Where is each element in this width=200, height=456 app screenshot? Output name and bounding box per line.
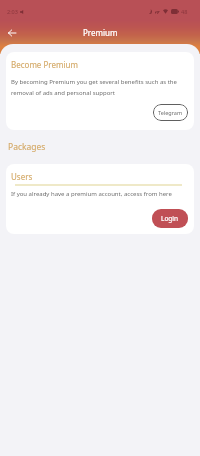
staticText: By becoming Premium you get several bene… <box>11 78 188 96</box>
staticText: Premium <box>83 27 118 38</box>
button[interactable]: Back <box>2 23 22 43</box>
staticText: Packages <box>8 141 46 153</box>
staticText: Telegram <box>158 109 183 116</box>
button[interactable]: Telegram <box>153 104 188 121</box>
staticText: 2:03 <box>7 8 18 15</box>
staticText: Login <box>161 214 179 223</box>
staticText: Users <box>11 171 33 182</box>
staticText: 48 <box>181 8 188 15</box>
staticText: If you already have a premium account, a… <box>11 190 172 198</box>
staticText: Become Premium <box>11 59 78 70</box>
button[interactable]: Login <box>152 209 188 228</box>
